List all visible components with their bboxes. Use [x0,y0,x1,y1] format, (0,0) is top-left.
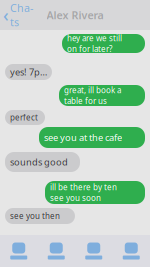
button[interactable]: Tab [0,235,37,267]
button[interactable]: Tab [112,235,150,267]
button[interactable]: Tab [37,235,75,267]
staticText: ill be there by ten [50,182,117,192]
staticText: Chats [10,1,33,29]
button[interactable]: Tab [75,235,112,267]
staticText: Alex Rivera [46,8,103,22]
staticText: see you soon [50,192,101,203]
button[interactable]: Back [3,4,33,26]
staticText: great, ill book a [64,85,121,95]
staticText: perfect [10,112,38,123]
staticText: table for us [64,95,107,106]
staticText: see you at the cafe [44,131,122,144]
staticText: on for later? [67,43,112,54]
staticText: hey are we still [67,33,122,43]
staticText: sounds good [10,156,68,168]
staticText: see you then [10,211,60,221]
staticText: yes! 7pm [10,66,47,78]
staticText: ‹ [3,3,9,26]
